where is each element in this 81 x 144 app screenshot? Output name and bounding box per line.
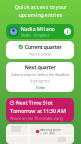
button[interactable]: Next Time Slot [6,98,74,122]
button[interactable]: Nadia Milano [6,24,74,39]
staticText: i [66,28,68,35]
staticText: Meeting point [40,128,61,131]
staticText: Nadia Milano [20,25,54,32]
button[interactable]: View [29,84,51,90]
staticText: Tomorrow at 11:30 AM [10,107,66,114]
staticText: 2 min away [40,131,54,135]
staticText: In progress [30,78,50,83]
staticText: Next quarter [24,64,55,71]
staticText: Quick access to your [14,3,66,10]
staticText: Current quarter [24,43,61,50]
staticText: upcoming entries [18,11,62,19]
staticText: Studio · Graphics [20,32,49,38]
staticText: Please arrive 10 minutes early [10,115,63,121]
staticText: Next Time Slot [15,99,52,106]
staticText: View [35,85,44,90]
staticText: Submit entries before the deadline [11,72,69,77]
staticText: You're Done! [29,51,51,57]
